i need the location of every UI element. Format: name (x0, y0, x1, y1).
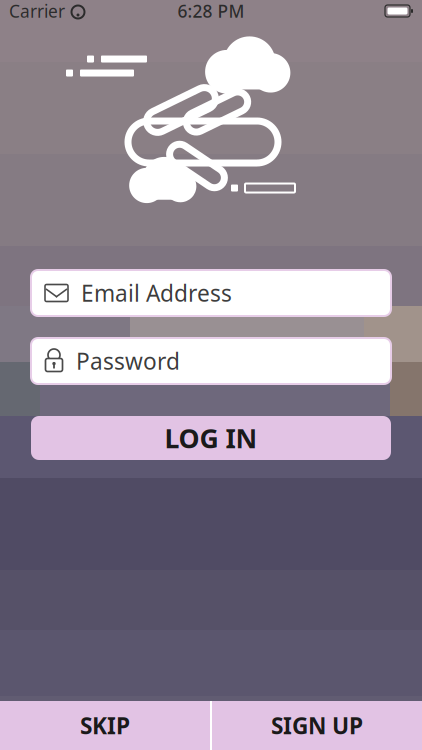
button[interactable]: Password (31, 338, 391, 384)
button[interactable]: SIGN UP (212, 701, 422, 750)
button[interactable]: Email Address (31, 270, 391, 316)
button[interactable]: SKIP (0, 701, 210, 750)
staticText: SKIP (80, 710, 130, 740)
staticText: Email Address (81, 278, 232, 308)
staticText: Carrier (9, 0, 65, 22)
button[interactable]: LOG IN (31, 416, 391, 460)
staticText: LOG IN (164, 420, 257, 456)
staticText: Password (76, 346, 180, 376)
staticText: SIGN UP (271, 710, 363, 740)
staticText: 6:28 PM (177, 0, 244, 22)
